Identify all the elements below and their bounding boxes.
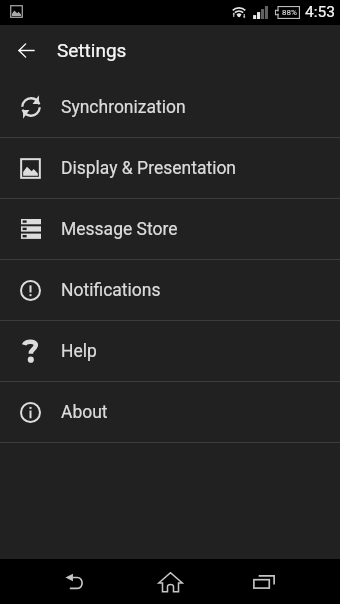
staticText: 4:53 <box>305 3 335 21</box>
button[interactable]: Back <box>38 559 114 604</box>
button[interactable]: Navigate up <box>0 25 48 77</box>
staticText: Display & Presentation <box>61 158 237 179</box>
staticText: About <box>61 402 108 423</box>
button[interactable]: Notifications <box>0 260 340 320</box>
staticText: 88% <box>282 8 297 17</box>
staticText: Message Store <box>61 219 178 240</box>
staticText: Synchronization <box>61 97 186 118</box>
button[interactable]: Home <box>132 559 208 604</box>
button[interactable]: About <box>0 382 340 442</box>
staticText: Settings <box>57 39 127 61</box>
button[interactable]: Synchronization <box>0 77 340 137</box>
button[interactable]: Recent apps <box>226 559 302 604</box>
button[interactable]: Message Store <box>0 199 340 259</box>
staticText: Help <box>61 341 97 362</box>
button[interactable]: Display & Presentation <box>0 138 340 198</box>
button[interactable]: Help <box>0 321 340 381</box>
staticText: Notifications <box>61 280 161 301</box>
